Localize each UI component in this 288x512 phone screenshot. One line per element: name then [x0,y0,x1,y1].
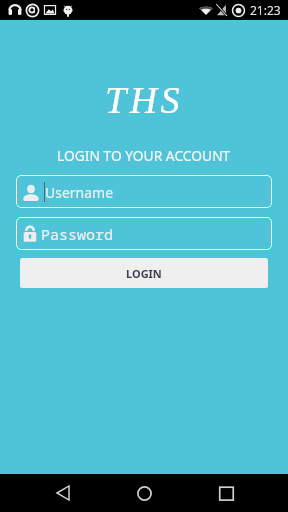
staticText: Username [45,183,114,202]
button[interactable]: Username [16,175,272,208]
button[interactable]: LOGIN [20,258,268,288]
staticText: LOGIN [126,266,162,281]
staticText: Password [41,224,114,244]
staticText: THS [105,79,184,121]
button[interactable]: Back [44,474,82,512]
button[interactable]: Password [16,217,272,250]
staticText: LOGIN TO YOUR ACCOUNT [57,146,231,165]
button[interactable]: Home [125,474,163,512]
button[interactable]: Recent apps [207,474,245,512]
staticText: 21:23 [250,2,281,18]
